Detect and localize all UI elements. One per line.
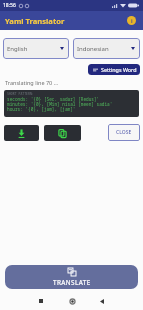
button[interactable]: TRANSLATE	[5, 265, 138, 289]
button[interactable]: Copy	[44, 125, 81, 141]
button[interactable]: English	[3, 38, 69, 59]
staticText: Indonesian	[77, 45, 109, 53]
button[interactable]: Download	[4, 125, 39, 141]
button[interactable]: Home	[65, 294, 79, 308]
staticText: SHORT PATTERN:	[7, 92, 34, 96]
staticText: Settings Word	[101, 66, 137, 73]
staticText: TRANSLATE	[53, 278, 91, 287]
button[interactable]: Indonesian	[73, 38, 140, 59]
staticText: 18:56	[3, 2, 16, 9]
staticText: Translating line 70 ...	[5, 79, 59, 86]
staticText: i	[131, 17, 133, 24]
button[interactable]: Back	[95, 294, 109, 308]
button[interactable]: Info	[127, 16, 136, 25]
staticText: hours: '{0}, [jam], [jam]'	[7, 106, 76, 112]
staticText: minutes: '{0}, [Min] nisal [meen] sadia'	[7, 101, 113, 107]
staticText: English	[7, 45, 28, 53]
button[interactable]: Recents	[34, 294, 48, 308]
staticText: seconds: '{0} [Sec. sadar] [Redus]'	[7, 96, 100, 102]
staticText: CLOSE	[116, 129, 132, 136]
staticText: Yaml Translator	[5, 16, 65, 26]
button[interactable]: CLOSE	[108, 124, 140, 141]
button[interactable]: Settings Word	[88, 64, 140, 75]
